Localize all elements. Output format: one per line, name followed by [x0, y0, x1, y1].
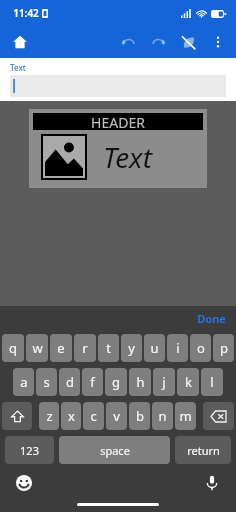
button[interactable]: space [59, 436, 170, 464]
button[interactable]: More options [203, 27, 233, 57]
button[interactable]: t [98, 334, 119, 362]
staticText: j [162, 373, 166, 391]
staticText: space [100, 443, 130, 458]
staticText: a [20, 373, 28, 391]
staticText: w [32, 339, 43, 357]
button[interactable]: a [13, 368, 34, 396]
staticText: f [90, 373, 95, 391]
staticText: b [136, 407, 144, 425]
staticText: Done [197, 311, 226, 326]
staticText: n [158, 407, 167, 425]
button[interactable]: b [129, 402, 150, 430]
button[interactable]: j [153, 368, 175, 396]
staticText: y [128, 339, 135, 357]
staticText: return [187, 443, 220, 458]
button[interactable]: l [201, 368, 223, 396]
staticText: h [136, 373, 145, 391]
staticText: k [185, 373, 192, 391]
staticText: p [220, 339, 228, 357]
staticText: z [46, 407, 53, 425]
button[interactable]: q [2, 334, 24, 362]
staticText: c [90, 407, 97, 425]
button[interactable]: Shift [2, 402, 32, 430]
button[interactable]: Done [195, 309, 228, 328]
button[interactable]: c [83, 402, 104, 430]
button[interactable] [10, 75, 226, 97]
button[interactable]: v [106, 402, 127, 430]
button[interactable]: g [105, 368, 127, 396]
button[interactable]: x [61, 402, 81, 430]
staticText: x [68, 407, 75, 425]
button[interactable]: u [144, 334, 165, 362]
staticText: u [150, 339, 159, 357]
staticText: d [66, 373, 74, 391]
button[interactable]: Backspace [203, 402, 234, 430]
button[interactable]: p [213, 334, 234, 362]
button[interactable]: s [36, 368, 57, 396]
button[interactable]: Voice input [201, 472, 223, 494]
staticText: l [210, 373, 214, 391]
button[interactable]: d [59, 368, 80, 396]
staticText: t [106, 339, 111, 357]
button[interactable]: h [129, 368, 151, 396]
staticText: m [179, 407, 192, 425]
button[interactable]: Toggle layout inspection [173, 27, 203, 57]
button[interactable]: o [190, 334, 211, 362]
button[interactable]: y [121, 334, 142, 362]
button[interactable]: Emoji [13, 472, 35, 494]
button[interactable]: z [39, 402, 59, 430]
staticText: 123 [20, 443, 39, 458]
staticText: v [113, 407, 120, 425]
button[interactable]: n [152, 402, 173, 430]
button[interactable]: k [177, 368, 199, 396]
staticText: Text [103, 138, 152, 176]
button[interactable]: 123 [5, 436, 54, 464]
staticText: q [9, 339, 17, 357]
staticText: r [82, 339, 88, 357]
staticText: o [197, 339, 205, 357]
staticText: 11:42 [13, 6, 39, 20]
button[interactable]: Redo [143, 27, 173, 57]
staticText: s [43, 373, 50, 391]
button[interactable]: return [175, 436, 231, 464]
button[interactable]: m [175, 402, 196, 430]
button[interactable]: Undo [113, 27, 143, 57]
staticText: g [112, 373, 120, 391]
staticText: e [57, 339, 65, 357]
staticText: Text [10, 62, 26, 73]
staticText: HEADER [91, 113, 145, 130]
button[interactable]: r [74, 334, 96, 362]
button[interactable]: e [50, 334, 72, 362]
button[interactable]: Home [6, 28, 34, 56]
staticText: i [176, 339, 180, 357]
button[interactable]: f [82, 368, 103, 396]
button[interactable]: w [26, 334, 48, 362]
button[interactable]: i [167, 334, 188, 362]
